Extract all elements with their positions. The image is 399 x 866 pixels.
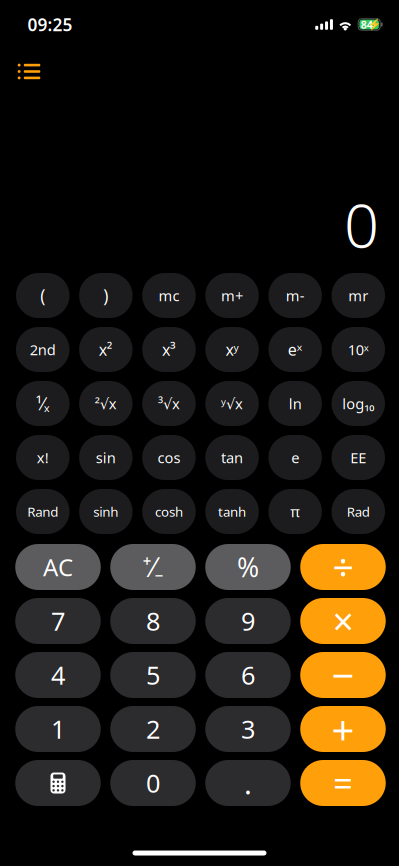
staticText: %: [237, 549, 259, 585]
button[interactable]: .: [205, 760, 291, 806]
button[interactable]: log₁₀: [331, 381, 385, 426]
staticText: ⚡: [368, 19, 381, 31]
staticText: mr: [348, 286, 368, 305]
staticText: sin: [96, 448, 116, 467]
button[interactable]: ³√x: [142, 381, 196, 426]
button[interactable]: EE: [331, 435, 385, 480]
button[interactable]: mr: [331, 273, 385, 318]
staticText: =: [333, 760, 353, 806]
button[interactable]: Basic calculator: [15, 760, 101, 806]
staticText: π: [290, 502, 300, 521]
staticText: eˣ: [288, 339, 303, 360]
staticText: ×: [332, 596, 353, 646]
button[interactable]: 2nd: [16, 327, 69, 372]
staticText: 5: [146, 658, 160, 692]
staticText: x²: [99, 339, 113, 360]
staticText: ): [103, 284, 108, 307]
staticText: 9: [241, 604, 255, 638]
button[interactable]: x²: [79, 327, 133, 372]
staticText: .: [244, 763, 252, 802]
button[interactable]: 9: [205, 598, 291, 644]
staticText: sinh: [93, 503, 118, 520]
button[interactable]: ): [79, 273, 133, 318]
staticText: log₁₀: [342, 394, 374, 413]
staticText: 2nd: [30, 340, 56, 359]
button[interactable]: m+: [205, 273, 259, 318]
staticText: mc: [158, 286, 179, 305]
button[interactable]: 5: [110, 652, 196, 698]
button[interactable]: π: [268, 489, 322, 534]
button[interactable]: AC: [15, 544, 101, 590]
staticText: (: [40, 284, 45, 307]
button[interactable]: Rad: [331, 489, 385, 534]
button[interactable]: e: [268, 435, 322, 480]
staticText: e: [291, 448, 299, 467]
button[interactable]: m-: [268, 273, 322, 318]
staticText: ¹⁄ₓ: [36, 392, 50, 415]
button[interactable]: cosh: [142, 489, 196, 534]
button[interactable]: ⁺⁄₋: [110, 544, 196, 590]
button[interactable]: ²√x: [79, 381, 133, 426]
button[interactable]: ÷: [300, 544, 386, 590]
button[interactable]: 10ˣ: [331, 327, 385, 372]
button[interactable]: 0: [110, 760, 196, 806]
button[interactable]: (: [16, 273, 69, 318]
staticText: 0: [146, 766, 160, 800]
button[interactable]: 1: [15, 706, 101, 752]
staticText: 84: [361, 18, 373, 32]
staticText: x³: [162, 339, 176, 360]
button[interactable]: tan: [205, 435, 259, 480]
staticText: 09:25: [27, 13, 72, 36]
button[interactable]: ¹⁄ₓ: [16, 381, 69, 426]
button[interactable]: =: [300, 760, 386, 806]
staticText: 10ˣ: [348, 340, 369, 359]
staticText: ⁺⁄₋: [142, 549, 163, 585]
staticText: Rand: [27, 503, 58, 520]
staticText: EE: [350, 448, 366, 467]
staticText: ³√x: [158, 394, 180, 413]
staticText: 7: [51, 604, 65, 638]
staticText: 0: [344, 183, 379, 265]
button[interactable]: 2: [110, 706, 196, 752]
staticText: ÷: [332, 542, 353, 592]
button[interactable]: History: [7, 49, 51, 93]
staticText: x!: [37, 448, 49, 467]
button[interactable]: mc: [142, 273, 196, 318]
button[interactable]: xʸ: [205, 327, 259, 372]
staticText: 3: [241, 712, 255, 746]
button[interactable]: 8: [110, 598, 196, 644]
staticText: cosh: [155, 503, 183, 520]
staticText: 4: [51, 658, 65, 692]
staticText: Rad: [347, 503, 370, 520]
staticText: 2: [146, 712, 160, 746]
staticText: tanh: [218, 503, 246, 520]
staticText: xʸ: [226, 339, 239, 360]
staticText: 8: [146, 604, 160, 638]
button[interactable]: ln: [268, 381, 322, 426]
staticText: m+: [221, 286, 243, 305]
button[interactable]: tanh: [205, 489, 259, 534]
staticText: tan: [221, 448, 243, 467]
button[interactable]: ×: [300, 598, 386, 644]
button[interactable]: cos: [142, 435, 196, 480]
staticText: ʸ√x: [221, 394, 243, 413]
button[interactable]: sin: [79, 435, 133, 480]
button[interactable]: 7: [15, 598, 101, 644]
staticText: 1: [51, 712, 65, 746]
button[interactable]: 3: [205, 706, 291, 752]
button[interactable]: sinh: [79, 489, 133, 534]
staticText: +: [331, 702, 354, 755]
staticText: 6: [241, 658, 255, 692]
button[interactable]: ʸ√x: [205, 381, 259, 426]
button[interactable]: %: [205, 544, 291, 590]
button[interactable]: −: [300, 652, 386, 698]
button[interactable]: 4: [15, 652, 101, 698]
staticText: cos: [157, 448, 180, 467]
staticText: ²√x: [95, 394, 117, 413]
button[interactable]: x³: [142, 327, 196, 372]
button[interactable]: eˣ: [268, 327, 322, 372]
button[interactable]: Rand: [16, 489, 69, 534]
button[interactable]: +: [300, 706, 386, 752]
button[interactable]: 6: [205, 652, 291, 698]
button[interactable]: x!: [16, 435, 69, 480]
